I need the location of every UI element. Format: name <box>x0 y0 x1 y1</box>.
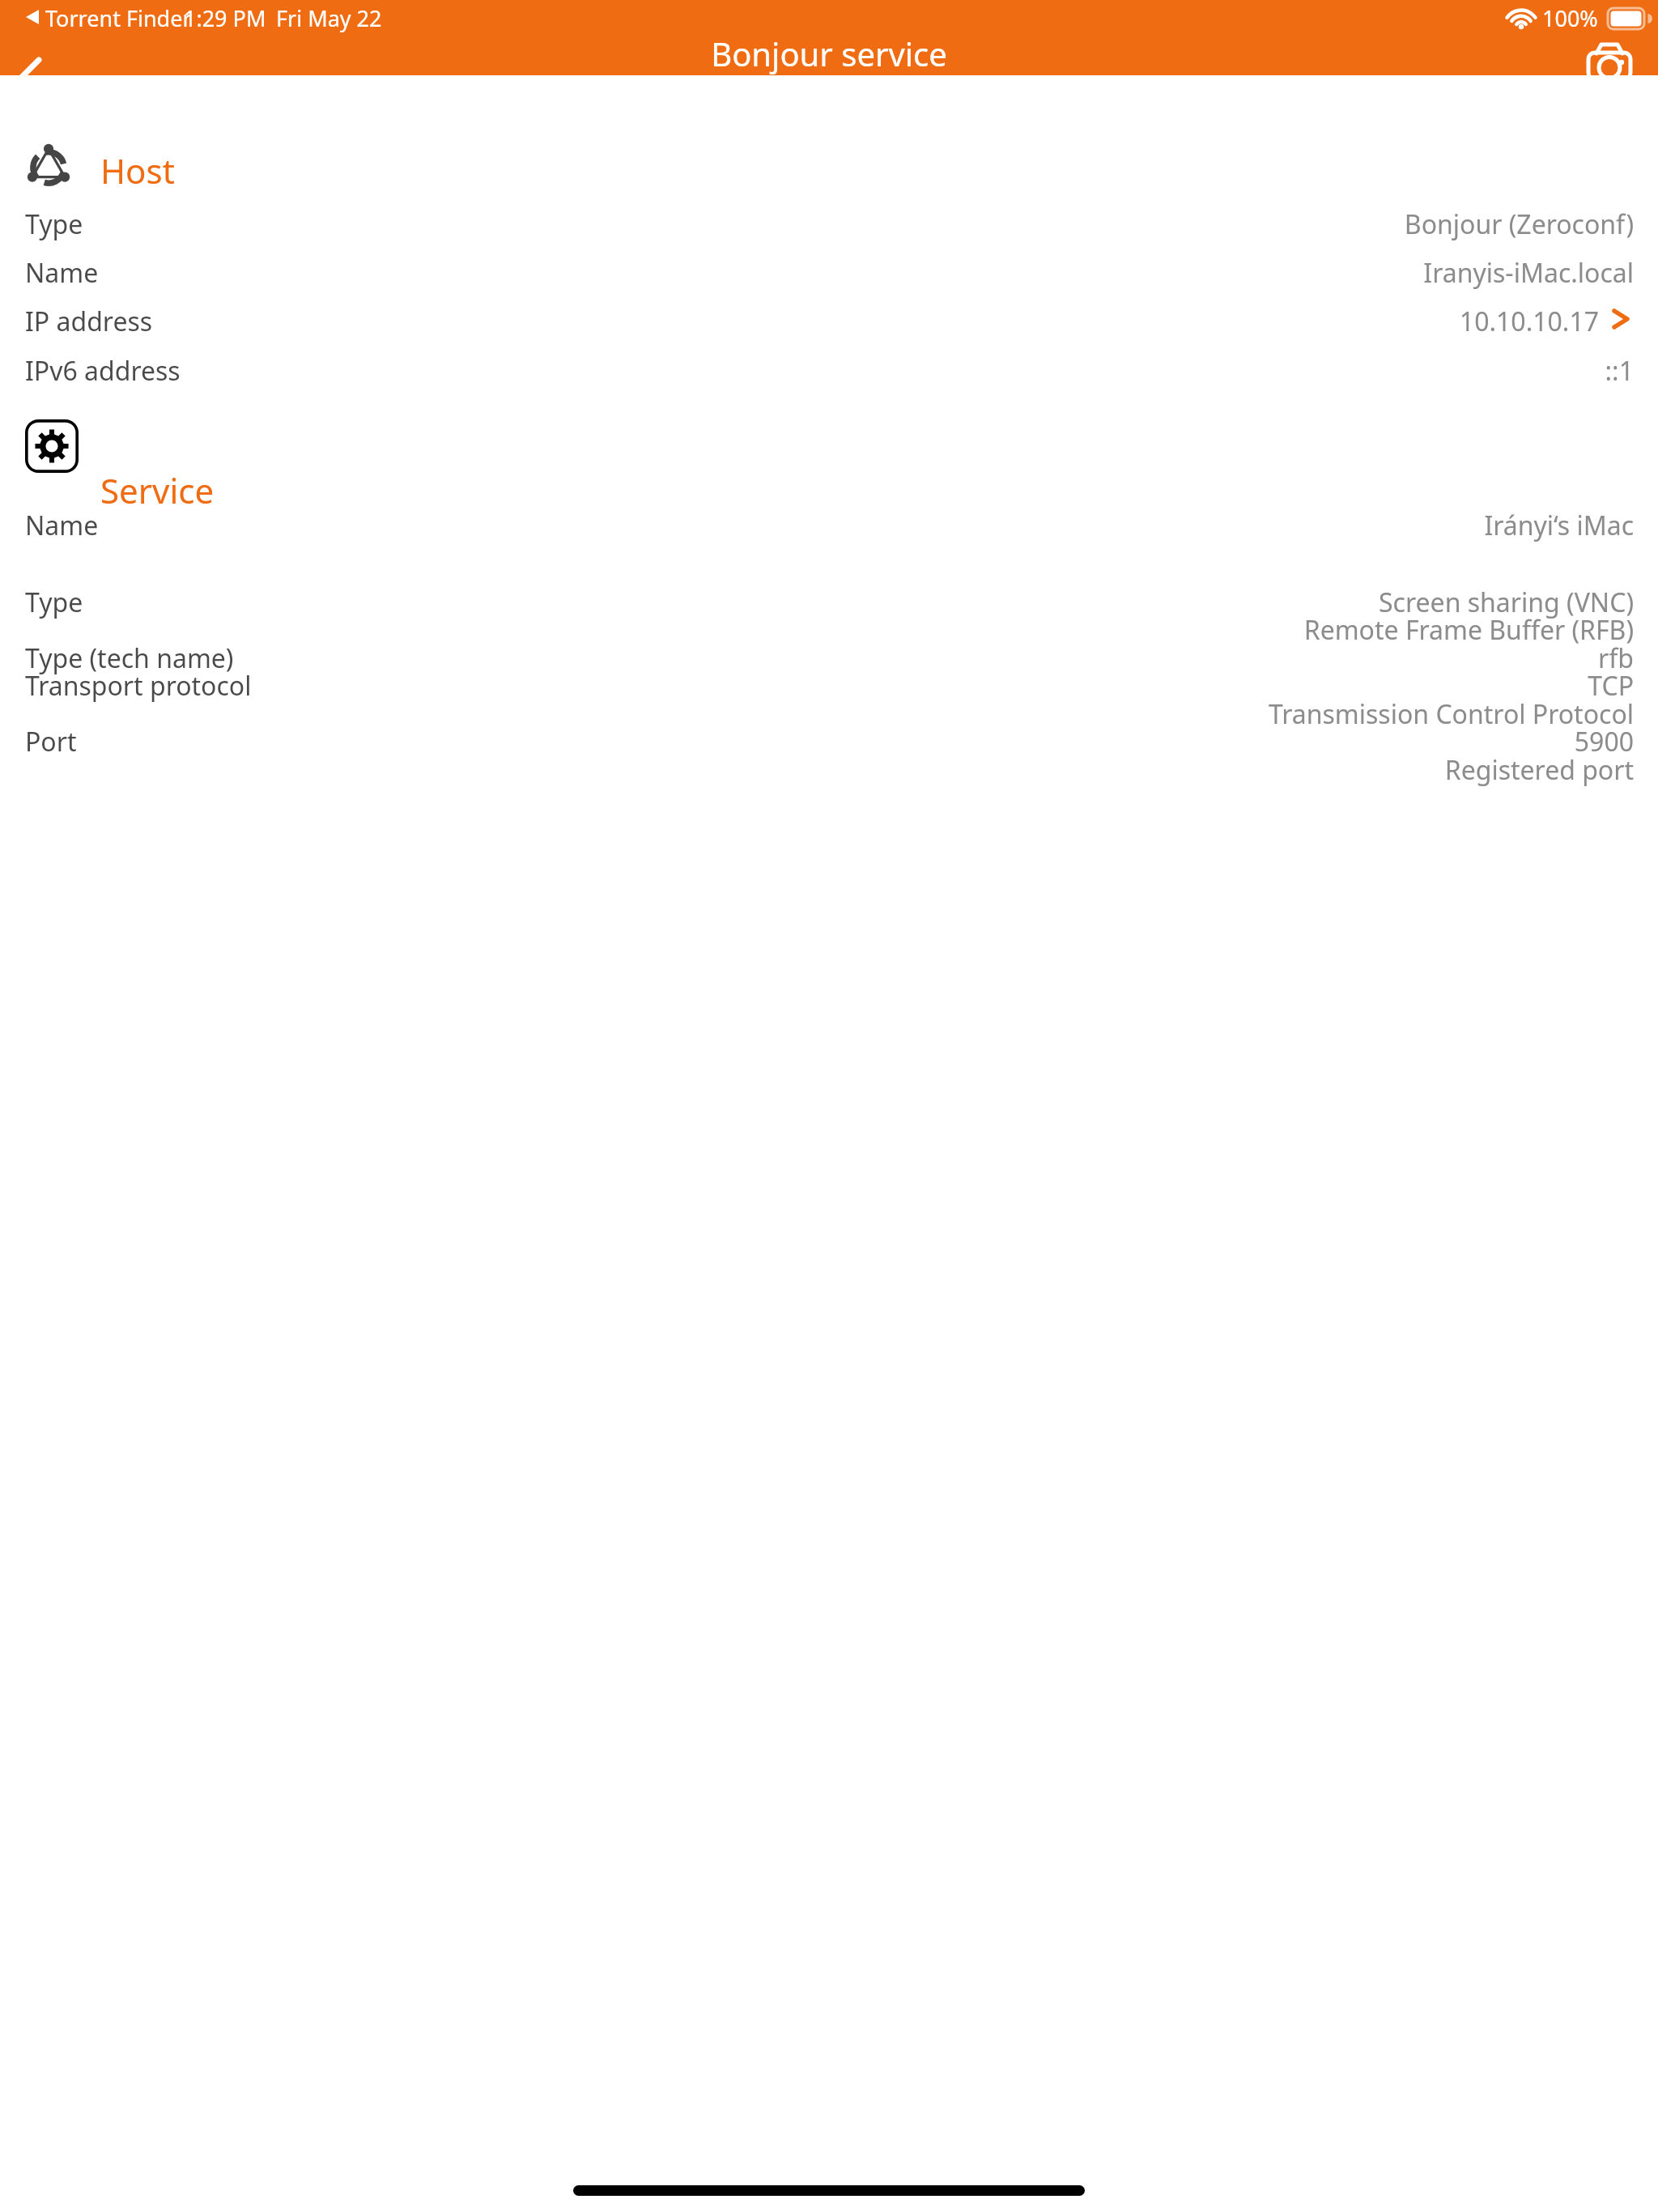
staticText: Iranyis-iMac.local <box>1423 255 1634 291</box>
staticText: Remote Frame Buffer (RFB) <box>1303 612 1634 648</box>
staticText: rfb <box>1598 640 1634 676</box>
staticText: 10.10.10.17 <box>1459 304 1599 339</box>
staticText: IP address <box>25 304 153 339</box>
staticText: Bonjour service <box>711 32 947 75</box>
staticText: ::1 <box>1605 353 1634 389</box>
staticText: TCP <box>1588 668 1634 704</box>
staticText: 5900 <box>1574 724 1634 759</box>
staticText: Name <box>25 508 99 543</box>
button[interactable]: IP address <box>0 297 1658 339</box>
staticText: Type (tech name) <box>25 640 234 676</box>
button[interactable]: Back <box>0 39 62 100</box>
staticText: Registered port <box>1444 752 1634 788</box>
staticText: Name <box>25 255 99 291</box>
staticText: 1:29 PM <box>184 3 266 33</box>
staticText: Transmission Control Protocol <box>1269 696 1634 732</box>
staticText: Type <box>25 206 83 242</box>
staticText: Transport protocol <box>25 668 252 704</box>
staticText: 100% <box>1542 3 1598 33</box>
staticText: Host <box>100 147 175 194</box>
staticText: Port <box>25 724 77 759</box>
staticText: Irányi‘s iMac <box>1484 508 1634 543</box>
staticText: Torrent Finder <box>45 3 192 33</box>
staticText: Type <box>25 585 83 620</box>
staticText: Screen sharing (VNC) <box>1379 585 1634 620</box>
button[interactable]: Camera <box>1579 32 1640 94</box>
staticText: IPv6 address <box>25 353 181 389</box>
staticText: Fri May 22 <box>276 3 382 33</box>
staticText: Bonjour (Zeroconf) <box>1404 206 1634 242</box>
staticText: Service <box>100 467 215 513</box>
